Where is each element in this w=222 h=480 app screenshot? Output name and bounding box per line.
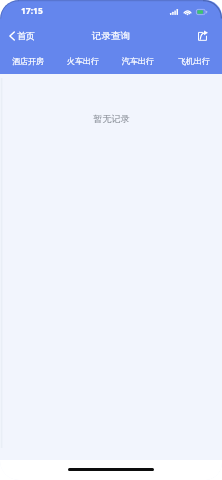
staticText: 暂无记录 <box>93 113 130 125</box>
staticText: 火车出行 <box>67 56 99 66</box>
button[interactable]: 火车出行 <box>55 50 110 74</box>
staticText: 记录查询 <box>92 30 130 42</box>
staticText: 17:15 <box>21 5 43 17</box>
button[interactable]: 首页 <box>0 21 43 50</box>
staticText: 酒店开房 <box>12 56 44 66</box>
staticText: 汽车出行 <box>122 56 154 66</box>
button[interactable]: Share <box>189 21 222 50</box>
button[interactable]: 飞机出行 <box>166 50 222 74</box>
staticText: 首页 <box>17 30 35 41</box>
button[interactable]: 酒店开房 <box>0 50 55 74</box>
staticText: 飞机出行 <box>178 56 210 66</box>
button[interactable]: 汽车出行 <box>110 50 166 74</box>
